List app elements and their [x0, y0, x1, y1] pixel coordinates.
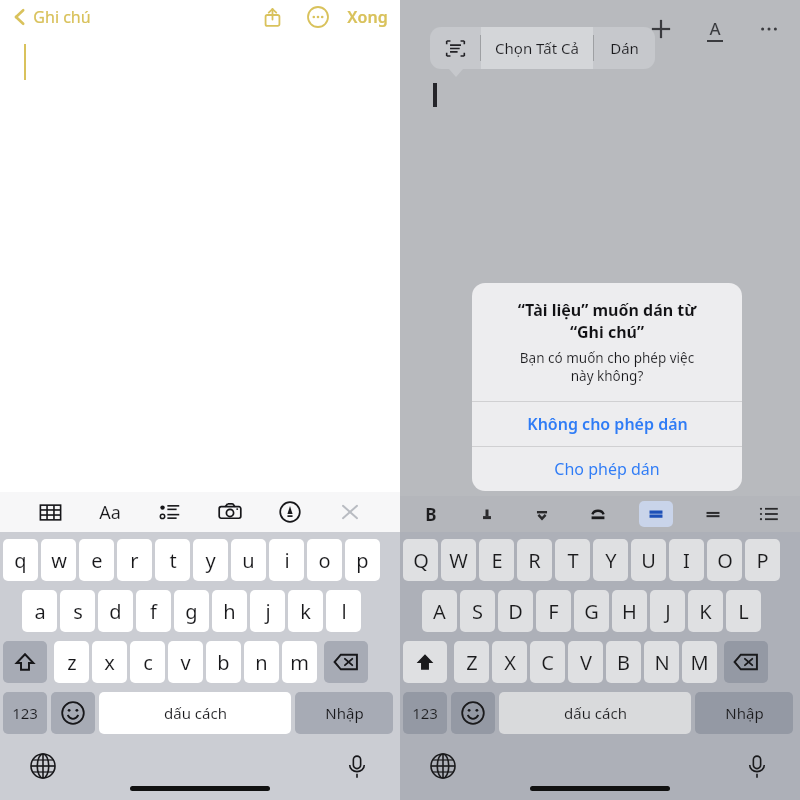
button[interactable]: A — [422, 590, 457, 632]
button[interactable]: K — [688, 590, 723, 632]
button[interactable]: H — [612, 590, 647, 632]
button[interactable]: t — [155, 539, 190, 581]
button[interactable]: Underline style — [639, 501, 673, 527]
button[interactable]: x — [92, 641, 127, 683]
button[interactable]: 123 — [403, 692, 447, 734]
button[interactable]: U — [631, 539, 666, 581]
button[interactable]: F — [536, 590, 571, 632]
button[interactable]: E — [479, 539, 514, 581]
button[interactable]: Camera — [212, 494, 248, 530]
button[interactable]: 123 — [3, 692, 47, 734]
button[interactable]: Scan text — [430, 27, 480, 69]
button[interactable]: J — [650, 590, 685, 632]
button[interactable]: Add — [644, 12, 678, 46]
button[interactable]: M — [682, 641, 717, 683]
button[interactable]: q — [3, 539, 38, 581]
staticText: l — [341, 598, 347, 625]
button[interactable]: Change keyboard — [426, 749, 460, 783]
button[interactable]: R — [517, 539, 552, 581]
button[interactable]: l — [326, 590, 361, 632]
button[interactable]: n — [244, 641, 279, 683]
button[interactable]: Không cho phép dán — [472, 402, 742, 446]
button[interactable]: Markup — [272, 494, 308, 530]
staticText: K — [699, 598, 712, 625]
button[interactable]: Cho phép dán — [472, 447, 742, 491]
button[interactable]: B — [416, 499, 446, 529]
button[interactable]: Table — [32, 494, 68, 530]
button[interactable]: Chọn Tất Cả — [481, 27, 593, 69]
button[interactable]: Share — [257, 2, 287, 32]
button[interactable]: Emoji — [51, 692, 95, 734]
button[interactable]: T — [555, 539, 590, 581]
button[interactable]: Delete — [724, 641, 768, 683]
button[interactable]: D — [498, 590, 533, 632]
button[interactable]: Change keyboard — [26, 749, 60, 783]
button[interactable]: Text format — [698, 12, 732, 46]
button[interactable]: s — [60, 590, 95, 632]
staticText: Không cho phép dán — [527, 413, 688, 435]
button[interactable]: Ghi chú — [8, 6, 93, 28]
button[interactable]: p — [345, 539, 380, 581]
button[interactable]: Dán — [594, 27, 655, 69]
button[interactable]: u — [231, 539, 266, 581]
staticText: L — [738, 598, 749, 625]
button[interactable]: e — [79, 539, 114, 581]
button[interactable]: Thin underline — [698, 499, 728, 529]
button[interactable]: j — [250, 590, 285, 632]
button[interactable]: I — [669, 539, 704, 581]
button[interactable]: f — [136, 590, 171, 632]
button[interactable]: Shift — [3, 641, 47, 683]
button[interactable]: Q — [403, 539, 438, 581]
button[interactable]: Xong — [345, 6, 390, 28]
button[interactable]: Close keyboard — [332, 494, 368, 530]
staticText: C — [541, 649, 554, 676]
button[interactable]: More — [752, 12, 786, 46]
staticText: B — [617, 649, 630, 676]
button[interactable]: o — [307, 539, 342, 581]
button[interactable]: Indent — [472, 499, 502, 529]
button[interactable]: C — [530, 641, 565, 683]
button[interactable]: B — [606, 641, 641, 683]
button[interactable]: g — [174, 590, 209, 632]
button[interactable]: Nhập — [295, 692, 393, 734]
button[interactable]: k — [288, 590, 323, 632]
button[interactable]: X — [492, 641, 527, 683]
button[interactable]: Dictation — [740, 749, 774, 783]
button[interactable]: z — [54, 641, 89, 683]
button[interactable]: dấu cách — [499, 692, 691, 734]
button[interactable]: W — [441, 539, 476, 581]
button[interactable]: G — [574, 590, 609, 632]
button[interactable]: b — [206, 641, 241, 683]
button[interactable]: More options — [303, 2, 333, 32]
button[interactable]: h — [212, 590, 247, 632]
button[interactable]: P — [745, 539, 780, 581]
button[interactable]: Bulleted list — [754, 499, 784, 529]
button[interactable]: d — [98, 590, 133, 632]
button[interactable]: N — [644, 641, 679, 683]
button[interactable]: Z — [454, 641, 489, 683]
button[interactable]: m — [282, 641, 317, 683]
button[interactable]: w — [41, 539, 76, 581]
staticText: e — [91, 547, 103, 574]
button[interactable]: Nhập — [695, 692, 793, 734]
button[interactable]: r — [117, 539, 152, 581]
button[interactable]: Shift — [403, 641, 447, 683]
button[interactable]: Dictation — [340, 749, 374, 783]
button[interactable]: L — [726, 590, 761, 632]
button[interactable]: i — [269, 539, 304, 581]
button[interactable]: a — [22, 590, 57, 632]
button[interactable]: Style — [583, 499, 613, 529]
button[interactable]: v — [168, 641, 203, 683]
button[interactable]: c — [130, 641, 165, 683]
button[interactable]: dấu cách — [99, 692, 291, 734]
button[interactable]: O — [707, 539, 742, 581]
button[interactable]: Y — [593, 539, 628, 581]
button[interactable]: Checklist — [152, 494, 188, 530]
button[interactable]: Emoji — [451, 692, 495, 734]
button[interactable]: y — [193, 539, 228, 581]
button[interactable]: Delete — [324, 641, 368, 683]
button[interactable]: V — [568, 641, 603, 683]
button[interactable]: S — [460, 590, 495, 632]
button[interactable]: Format — [92, 494, 128, 530]
button[interactable]: Align bottom — [527, 499, 557, 529]
